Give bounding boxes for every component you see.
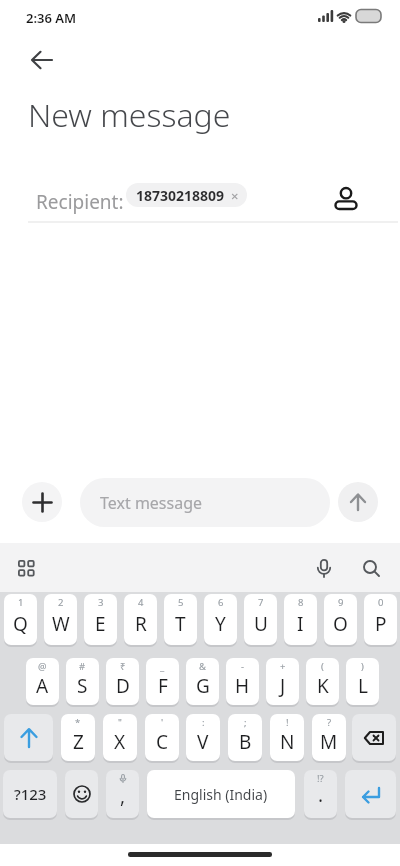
staticText: X [114,729,126,755]
staticText: Z [73,729,84,755]
button[interactable]: + [266,658,299,705]
button[interactable] [345,770,396,818]
staticText: + [280,660,286,673]
staticText: ?123 [14,784,47,804]
button[interactable] [22,482,62,522]
staticText: ? [327,716,332,729]
button[interactable]: " [103,714,137,761]
staticText: 6 [218,596,224,609]
button[interactable]: 6 [204,594,237,645]
button[interactable] [330,183,360,213]
staticText: 8 [298,596,304,609]
button[interactable]: ₹ [106,658,139,705]
staticText: R [135,611,147,637]
staticText: - [241,660,245,673]
button[interactable]: ? [312,714,346,761]
staticText: P [375,611,387,637]
staticText: New message [28,93,231,137]
staticText: T [175,611,186,637]
staticText: F [158,673,168,699]
button[interactable]: & [186,658,219,705]
button[interactable]: 1 [4,594,37,645]
button[interactable] [20,40,64,80]
button[interactable]: ; [228,714,262,761]
button[interactable]: , [106,770,139,818]
button[interactable]: ?123 [3,770,57,818]
staticText: & [199,660,206,673]
staticText: : [202,716,205,729]
button[interactable]: # [66,658,99,705]
staticText: ! [286,716,289,729]
staticText: U [254,611,268,637]
button[interactable]: 3 [84,594,117,645]
staticText: ( [321,660,324,673]
button[interactable] [8,550,44,586]
staticText: 3 [98,596,104,609]
button[interactable]: 18730218809 [126,183,247,207]
button[interactable]: - [226,658,259,705]
button[interactable]: ' [145,714,179,761]
staticText: B [239,729,252,755]
staticText: 18730218809 [136,186,225,205]
button[interactable]: ! [270,714,304,761]
staticText: !? [317,772,324,785]
staticText: 2:36 AM [26,9,77,27]
button[interactable] [65,770,98,818]
staticText: Text message [100,492,203,514]
staticText: N [280,729,295,755]
staticText: ; [244,716,247,729]
staticText: Y [215,611,226,637]
staticText: S [77,673,88,699]
button[interactable]: 5 [164,594,197,645]
staticText: 2 [58,596,64,609]
staticText: × [231,187,239,205]
staticText: E [95,611,106,637]
button[interactable]: ( [306,658,339,705]
staticText: Q [13,611,28,637]
staticText: D [116,673,130,699]
button[interactable]: 9 [324,594,357,645]
staticText: K [317,673,329,699]
staticText: V [197,729,209,755]
staticText: . [318,782,324,808]
button[interactable] [352,714,396,761]
staticText: C [156,729,169,755]
staticText: M [320,729,338,755]
button[interactable]: @ [26,658,59,705]
button[interactable]: English (India) [147,770,295,818]
button[interactable] [338,482,378,522]
staticText: 9 [338,596,344,609]
button[interactable]: ) [346,658,379,705]
staticText: 4 [138,596,144,609]
staticText: J [280,673,286,699]
button[interactable]: 2 [44,594,77,645]
button[interactable]: Text message [80,478,330,527]
staticText: , [120,783,126,809]
button[interactable] [353,550,389,586]
staticText: English (India) [174,785,268,804]
staticText: I [297,611,304,637]
staticText: ₹ [120,660,126,673]
button[interactable]: 0 [364,594,397,645]
staticText: 5 [178,596,184,609]
staticText: _ [160,660,165,673]
button[interactable]: !? [304,770,337,818]
button[interactable] [4,714,53,761]
staticText: G [196,673,210,699]
button[interactable]: : [186,714,220,761]
staticText: W [52,611,70,637]
button[interactable]: * [61,714,95,761]
staticText: H [235,673,250,699]
staticText: Recipient: [36,189,124,215]
button[interactable]: 7 [244,594,277,645]
staticText: " [118,716,122,729]
staticText: # [79,660,86,673]
staticText: ) [361,660,364,673]
staticText: O [333,611,348,637]
button[interactable]: _ [146,658,179,705]
button[interactable]: 8 [284,594,317,645]
button[interactable] [306,550,342,586]
staticText: 1 [18,596,24,609]
staticText: @ [38,660,47,673]
button[interactable]: 4 [124,594,157,645]
